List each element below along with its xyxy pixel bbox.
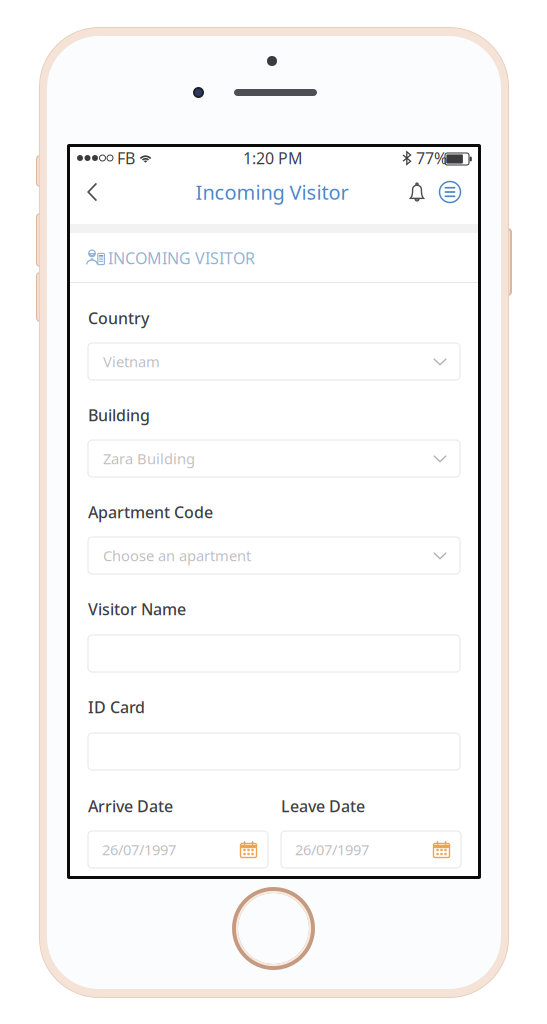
staticText: 26/07/1997	[295, 840, 369, 859]
staticText: Choose an apartment	[103, 546, 251, 565]
button[interactable]: Text field	[87, 493, 459, 530]
staticText: Arrive Date	[88, 795, 173, 817]
button[interactable]: 26/07/1997	[183, 493, 363, 530]
button[interactable]: Zara Building	[87, 493, 459, 530]
staticText: Leave Date	[281, 795, 365, 817]
staticText: INCOMING VISITOR	[108, 247, 255, 269]
button[interactable]: Choose an apartment	[87, 493, 459, 530]
button[interactable]: Vietnam	[87, 493, 459, 530]
staticText: 1:20 PM	[243, 147, 303, 169]
staticText: Visitor Name	[88, 598, 186, 620]
button[interactable]: 26/07/1997	[183, 493, 363, 530]
staticText: Building	[88, 404, 150, 426]
staticText: Apartment Code	[88, 501, 213, 523]
staticText: 77%	[416, 147, 447, 169]
staticText: Vietnam	[103, 352, 160, 371]
button[interactable]: Text field	[87, 493, 459, 530]
staticText: Zara Building	[103, 449, 195, 468]
staticText: ID Card	[88, 696, 145, 718]
staticText: Country	[88, 307, 149, 329]
staticText: 26/07/1997	[102, 840, 176, 859]
staticText: FB	[117, 147, 135, 169]
staticText: Incoming Visitor	[195, 179, 348, 205]
